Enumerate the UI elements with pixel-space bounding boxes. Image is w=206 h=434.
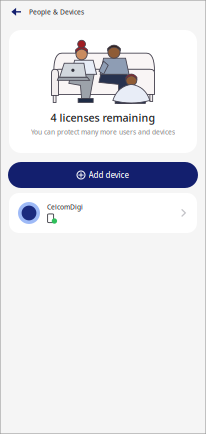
staticText: 4 licenses remaining	[50, 110, 155, 125]
button[interactable]: CelcomDigi	[9, 193, 197, 233]
staticText: Add device	[88, 170, 129, 180]
staticText: You can protect many more users and devi…	[31, 128, 175, 136]
staticText: People & Devices	[29, 8, 84, 16]
button[interactable]: Add device	[8, 162, 198, 188]
button[interactable]: Back	[0, 0, 29, 24]
staticText: CelcomDigi	[47, 203, 83, 211]
